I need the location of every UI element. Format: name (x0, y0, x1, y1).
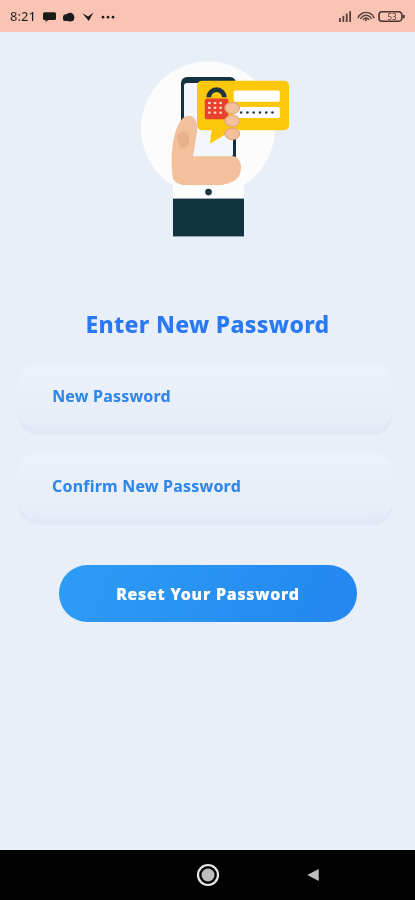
staticText: Reset Your Password (116, 583, 300, 605)
staticText: Confirm New Password (52, 475, 241, 497)
staticText: New Password (52, 385, 171, 407)
button[interactable]: Back (293, 855, 333, 895)
button[interactable]: Confirm New Password (18, 453, 393, 519)
button[interactable]: New Password (18, 363, 393, 429)
staticText: Enter New Password (85, 308, 330, 339)
button[interactable]: Home (188, 855, 228, 895)
staticText: 53 (387, 11, 397, 22)
button[interactable]: Reset Your Password (59, 565, 357, 622)
staticText: 8:21 (10, 7, 36, 25)
